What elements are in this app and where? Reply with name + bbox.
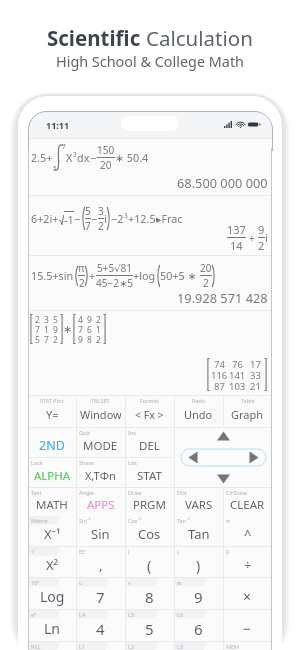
staticText: ALPHA [34, 468, 71, 484]
staticText: Share [79, 459, 94, 466]
staticText: i [265, 230, 268, 245]
staticText: STAT [137, 468, 162, 484]
staticText: Redo [192, 397, 206, 404]
button[interactable]: L5 [125, 610, 174, 641]
staticText: Graph [231, 407, 264, 422]
staticText: 116 [211, 369, 228, 380]
button[interactable]: u [76, 578, 125, 609]
staticText: CLEAR [230, 497, 265, 513]
staticText: 2.5+ [31, 150, 53, 165]
staticText: i [104, 211, 107, 226]
staticText: X² [46, 556, 59, 574]
button[interactable]: TBLSET [76, 396, 125, 427]
staticText: 3 [73, 150, 77, 159]
staticText: 2 [79, 276, 85, 290]
button[interactable]: w [174, 578, 223, 609]
button[interactable]: Sin⁻¹ [76, 516, 125, 546]
button[interactable]: Redo [174, 396, 223, 427]
button[interactable] [223, 428, 272, 457]
staticText: π [226, 517, 230, 524]
button[interactable]: EE [76, 547, 125, 577]
button[interactable] [174, 428, 223, 457]
button[interactable]: Quit [76, 428, 125, 457]
button[interactable] [223, 458, 272, 487]
button[interactable]: Cos⁻¹ [125, 516, 174, 546]
staticText: 87 [214, 380, 225, 391]
staticText: 5 [35, 334, 40, 344]
staticText: STAT Plot [40, 397, 64, 404]
staticText: 9 [78, 334, 83, 344]
staticText: 103 [229, 380, 246, 391]
button[interactable]: L2 [125, 642, 174, 650]
button[interactable]: − [223, 610, 272, 641]
button[interactable]: Test [28, 488, 76, 516]
staticText: ( [128, 548, 130, 555]
button[interactable]: List [125, 458, 174, 487]
button[interactable] [174, 458, 223, 487]
button[interactable]: Dist [174, 488, 223, 516]
button[interactable]: L1 [76, 642, 125, 650]
button[interactable]: v [125, 578, 174, 609]
staticText: Calculation [146, 24, 253, 52]
staticText: 33 [250, 369, 261, 380]
button[interactable]: Share [76, 458, 125, 487]
button[interactable]: Lock [28, 458, 76, 487]
button[interactable]: π [223, 516, 272, 546]
staticText: − [243, 619, 252, 638]
button[interactable]: MEM [223, 642, 272, 650]
staticText: 20 [100, 158, 112, 172]
staticText: 10ˣ [31, 579, 40, 586]
button[interactable]: L4 [76, 610, 125, 641]
button[interactable]: Format [125, 396, 174, 427]
staticText: 9 [87, 314, 92, 324]
button[interactable]: Matrix [28, 516, 76, 546]
staticText: 1 [96, 324, 101, 334]
button[interactable]: Tan⁻¹ [174, 516, 223, 546]
button[interactable]: ) [174, 547, 223, 577]
button[interactable]: ClrDraw [223, 488, 272, 516]
staticText: 4 [78, 314, 83, 324]
button[interactable]: Ins [125, 428, 174, 457]
staticText: 7 [96, 587, 105, 607]
staticText: − [90, 150, 97, 165]
staticText: ∗ 50.4 [115, 150, 149, 165]
staticText: Sin⁻¹ [79, 517, 91, 524]
button[interactable]: L3 [174, 642, 223, 650]
staticText: X⁻¹ [44, 525, 61, 543]
staticText: Tan⁻¹ [177, 517, 190, 524]
staticText: L4 [79, 611, 86, 618]
button[interactable]: Angle [76, 488, 125, 516]
staticText: L3 [177, 643, 184, 650]
staticText: ) [196, 556, 201, 575]
staticText: √ [31, 548, 35, 554]
button[interactable]: √ [28, 547, 76, 577]
button[interactable]: STAT Plot [28, 396, 76, 427]
staticText: APPS [87, 497, 115, 513]
button[interactable]: RCL [28, 642, 76, 650]
staticText: 2 [53, 334, 58, 344]
button[interactable]: 10ˣ [28, 578, 76, 609]
staticText: 14 [230, 238, 243, 253]
button[interactable]: × [223, 578, 272, 609]
staticText: X [66, 150, 73, 165]
staticText: ∗ [63, 323, 73, 336]
staticText: 7 [85, 219, 91, 233]
staticText: 2 [35, 314, 40, 324]
button[interactable]: Draw [125, 488, 174, 516]
button[interactable]: Table [223, 396, 272, 427]
staticText: L1 [79, 643, 86, 650]
staticText: Format [140, 397, 159, 404]
button[interactable]: L6 [174, 610, 223, 641]
button[interactable]: Direction pad [175, 428, 272, 487]
button[interactable]: 0 [223, 547, 272, 577]
button[interactable]: ( [125, 547, 174, 577]
staticText: 150 [97, 143, 115, 157]
staticText: 7 [44, 334, 49, 344]
staticText: 9 [258, 222, 265, 237]
staticText: Lock [31, 459, 43, 466]
staticText: 5 [85, 204, 91, 218]
staticText: Y= [46, 407, 59, 422]
staticText: L6 [177, 611, 184, 618]
button[interactable]: 2ND [28, 428, 76, 457]
button[interactable]: eˣ [28, 610, 76, 641]
